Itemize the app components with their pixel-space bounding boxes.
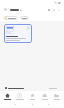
button[interactable] (0, 85, 64, 91)
button[interactable]: Offline (39, 91, 50, 101)
button[interactable] (3, 16, 18, 20)
button[interactable]: Switch to grid view (47, 8, 51, 12)
button[interactable] (10, 9, 22, 11)
button[interactable]: Starred (27, 91, 38, 101)
button[interactable]: Account (52, 8, 56, 12)
button[interactable]: Recents (47, 103, 50, 106)
button[interactable]: Item options (26, 26, 30, 30)
button[interactable]: Home (2, 91, 13, 101)
button[interactable]: Item options (4, 24, 32, 43)
button[interactable]: More options (57, 8, 61, 12)
button[interactable] (20, 16, 29, 20)
button[interactable]: Recent (14, 91, 25, 101)
button[interactable]: Home (31, 103, 34, 106)
button[interactable]: Files (51, 91, 62, 101)
button[interactable]: Open navigation menu (3, 7, 8, 12)
button[interactable]: Back (14, 103, 17, 106)
